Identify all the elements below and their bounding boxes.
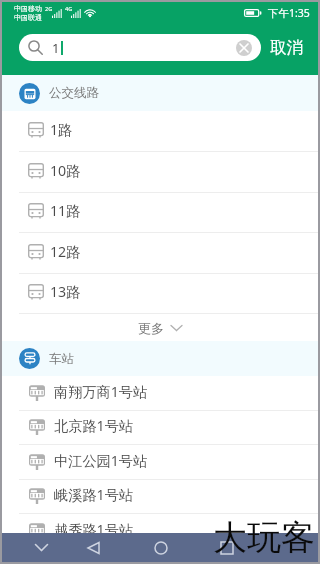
button[interactable]: 11路 bbox=[2, 192, 318, 233]
staticText: 更多 bbox=[138, 320, 164, 336]
staticText: 1 bbox=[52, 39, 60, 57]
staticText: 1路 bbox=[50, 120, 73, 139]
button[interactable]: Back bbox=[77, 533, 109, 562]
staticText: 10路 bbox=[50, 161, 81, 180]
button[interactable]: 更多 bbox=[2, 314, 318, 341]
button[interactable]: 峨溪路1号站 bbox=[2, 479, 318, 514]
staticText: 中江公园1号站 bbox=[54, 451, 148, 470]
staticText: 2G bbox=[45, 5, 53, 12]
button[interactable]: 取消 bbox=[265, 34, 308, 61]
staticText: 11路 bbox=[50, 201, 81, 220]
button[interactable]: 1路 bbox=[2, 111, 318, 152]
button[interactable]: 12路 bbox=[2, 233, 318, 274]
staticText: 越秀路1号站 bbox=[54, 520, 134, 539]
staticText: 车站 bbox=[49, 351, 74, 367]
button[interactable]: 10路 bbox=[2, 152, 318, 193]
button[interactable]: 南翔万商1号站 bbox=[2, 376, 318, 411]
staticText: 公交线路 bbox=[49, 85, 99, 101]
button[interactable]: 中江公园1号站 bbox=[2, 445, 318, 480]
button[interactable]: Recent apps bbox=[211, 533, 243, 562]
staticText: 中国移动 bbox=[14, 4, 42, 13]
staticText: 取消 bbox=[270, 37, 303, 58]
staticText: 大玩客 bbox=[213, 516, 315, 559]
button[interactable]: 北京路1号站 bbox=[2, 410, 318, 445]
staticText: 南翔万商1号站 bbox=[54, 382, 148, 401]
button[interactable]: 公交线路 bbox=[2, 75, 318, 111]
button[interactable]: 越秀路1号站 bbox=[2, 514, 318, 549]
staticText: 4G bbox=[65, 5, 73, 12]
button[interactable]: Home bbox=[145, 533, 177, 562]
staticText: 12路 bbox=[50, 242, 81, 261]
button[interactable]: Clear text bbox=[236, 40, 252, 56]
staticText: 中国联通 bbox=[14, 13, 42, 22]
staticText: 北京路1号站 bbox=[54, 416, 134, 435]
button[interactable]: 13路 bbox=[2, 273, 318, 314]
button[interactable]: 1 bbox=[19, 34, 261, 61]
staticText: 峨溪路1号站 bbox=[54, 485, 134, 504]
staticText: 下午1:35 bbox=[268, 6, 310, 20]
staticText: 13路 bbox=[50, 282, 81, 301]
button[interactable]: Hide keyboard bbox=[25, 533, 57, 562]
button[interactable]: 车站 bbox=[2, 341, 318, 376]
